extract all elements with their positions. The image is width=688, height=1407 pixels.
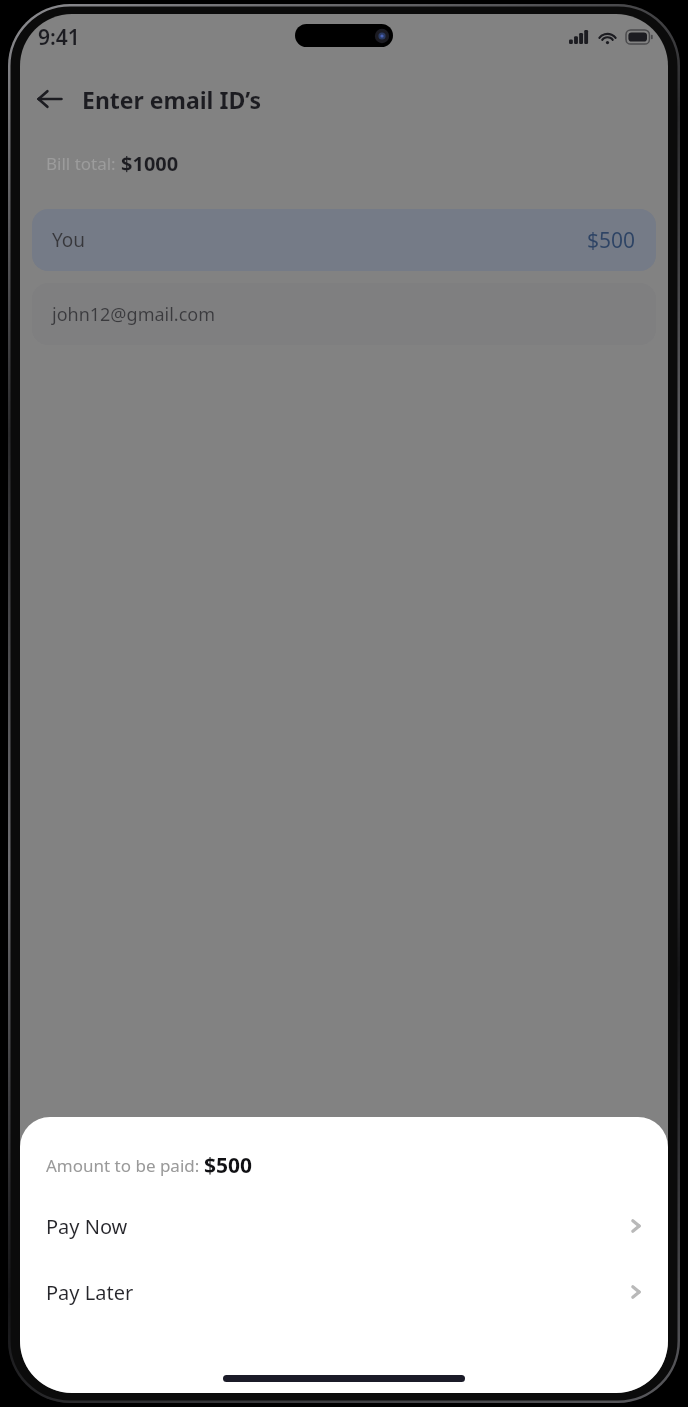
button[interactable]: Pay Later <box>20 1270 668 1314</box>
button[interactable]: You <box>32 209 656 271</box>
staticText: $500 <box>587 226 636 255</box>
staticText: Enter email ID’s <box>82 84 262 115</box>
button[interactable]: Back <box>28 77 72 121</box>
button[interactable]: Pay Now <box>20 1204 668 1248</box>
staticText: john12@gmail.com <box>52 302 216 327</box>
staticText: $500 <box>204 1151 253 1180</box>
staticText: 9:41 <box>38 23 80 52</box>
staticText: $1000 <box>121 150 179 177</box>
staticText: You <box>52 227 86 253</box>
staticText: Amount to be paid: <box>46 1154 204 1177</box>
button[interactable]: john12@gmail.com <box>32 283 656 345</box>
staticText: Bill total: <box>46 152 121 175</box>
staticText: Pay Now <box>46 1213 128 1240</box>
staticText: Pay Later <box>46 1279 134 1306</box>
